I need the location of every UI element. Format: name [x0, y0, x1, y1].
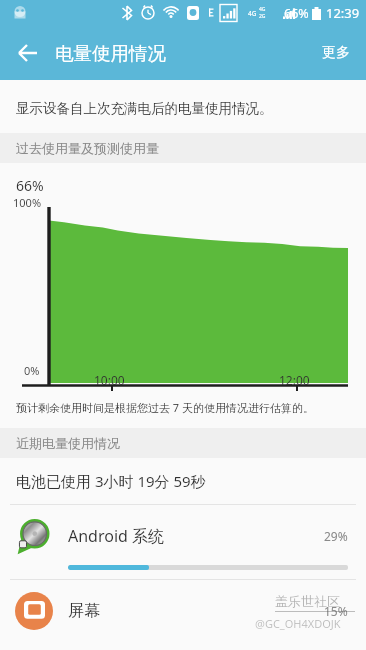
staticText: 12:00	[279, 372, 310, 388]
staticText: 电池已使用 3小时 19分 59秒	[16, 471, 206, 491]
staticText: Android 系统	[68, 525, 324, 547]
button[interactable]: Android 系统	[0, 505, 366, 579]
staticText: 15%	[324, 603, 348, 619]
button[interactable]: Back	[8, 33, 48, 73]
staticText: 近期电量使用情况	[16, 435, 120, 451]
staticText: 12:39	[326, 4, 360, 22]
staticText: 4G	[259, 6, 266, 13]
staticText: @GC_OH4XDOJK	[255, 616, 341, 631]
staticText: 盖乐世社区	[275, 593, 340, 609]
staticText: 0%	[24, 363, 40, 378]
staticText: 预计剩余使用时间是根据您过去 7 天的使用情况进行估算的。	[16, 400, 315, 415]
staticText: 屏幕	[68, 601, 324, 621]
staticText: 29%	[324, 528, 348, 544]
staticText: 10:00	[94, 372, 125, 388]
staticText: 更多	[322, 44, 350, 62]
staticText: 显示设备自上次充满电后的电量使用情况。	[16, 100, 273, 117]
staticText: 电量使用情况	[55, 42, 166, 65]
staticText: 4G	[248, 9, 257, 18]
staticText: 100%	[13, 195, 42, 210]
button[interactable]: 屏幕	[0, 580, 366, 642]
staticText: 过去使用量及预测使用量	[16, 140, 159, 156]
button[interactable]: 更多	[316, 36, 356, 70]
staticText: 66%	[284, 5, 309, 22]
staticText: 2G	[259, 13, 266, 20]
staticText: 66%	[16, 176, 44, 195]
